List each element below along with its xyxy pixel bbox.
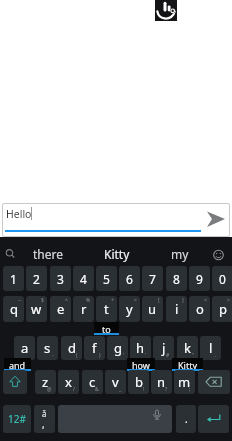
staticText: 5 [103, 271, 110, 287]
button[interactable]: and [4, 358, 31, 371]
button[interactable]: 6 [119, 266, 140, 291]
button[interactable] [155, 0, 177, 21]
button[interactable]: i [166, 296, 187, 322]
staticText: and [9, 359, 26, 371]
button[interactable] [198, 405, 229, 433]
button[interactable]: h [130, 336, 151, 360]
staticText: @ [47, 386, 52, 393]
staticText: 8 [173, 271, 180, 287]
staticText: f [92, 339, 97, 357]
staticText: ' [145, 352, 147, 359]
button[interactable]: p [212, 296, 232, 322]
staticText: ] [182, 297, 184, 304]
staticText: 12# [8, 412, 26, 426]
button[interactable]: a [14, 336, 35, 360]
staticText: t [104, 300, 109, 318]
staticText: q [10, 300, 18, 318]
button[interactable]: k [177, 336, 198, 360]
button[interactable] [58, 405, 172, 433]
button[interactable]: q [3, 296, 24, 322]
button[interactable]: 12# [3, 405, 31, 433]
button[interactable]: f [84, 336, 105, 360]
button[interactable]: t [96, 296, 117, 322]
button[interactable]: l [200, 336, 221, 360]
button[interactable]: 3 [50, 266, 71, 291]
button[interactable]: c [82, 370, 103, 394]
button[interactable]: 9 [189, 266, 210, 291]
button[interactable]: 2 [26, 266, 47, 291]
button[interactable]: 5 [96, 266, 117, 291]
staticText: c [89, 373, 96, 391]
button[interactable]: . [176, 405, 196, 433]
staticText: Hello [6, 207, 32, 221]
staticText: to [102, 323, 111, 335]
staticText: [ [158, 297, 160, 304]
button[interactable]: w [26, 296, 47, 322]
staticText: ? [165, 386, 168, 393]
button[interactable] [198, 370, 230, 394]
button[interactable] [2, 203, 230, 237]
button[interactable]: 0 [212, 266, 232, 291]
staticText: ~ [18, 297, 21, 304]
button[interactable] [202, 206, 230, 232]
staticText: y [126, 300, 133, 318]
staticText: h [136, 339, 145, 357]
button[interactable]: d [61, 336, 82, 360]
staticText: 6 [126, 271, 133, 287]
staticText: o [196, 300, 204, 318]
staticText: / [73, 386, 75, 393]
button[interactable]: m [174, 370, 195, 394]
staticText: s [44, 339, 51, 357]
button[interactable]: v [105, 370, 126, 394]
staticText: - [52, 352, 54, 359]
button[interactable] [3, 370, 27, 394]
staticText: % [86, 297, 91, 304]
staticText: my [171, 246, 189, 262]
button[interactable]: e [50, 296, 71, 322]
staticText: _ [119, 386, 122, 393]
staticText: 4 [80, 271, 87, 287]
staticText: ǎ [42, 408, 47, 419]
staticText: i [175, 300, 179, 318]
button[interactable]: how [127, 358, 155, 371]
staticText: l [209, 339, 213, 357]
staticText: Kitty [178, 359, 197, 371]
button[interactable]: u [142, 296, 163, 322]
button[interactable]: j [153, 336, 174, 360]
staticText: 0 [219, 271, 226, 287]
button[interactable]: 8 [166, 266, 187, 291]
staticText: ^ [65, 297, 68, 304]
button[interactable]: to [94, 322, 119, 335]
staticText: = [134, 297, 137, 304]
staticText: k [184, 339, 191, 357]
button[interactable] [0, 237, 232, 266]
button[interactable]: 1 [3, 266, 24, 291]
button[interactable]: Kitty [172, 358, 203, 371]
button[interactable]: r [73, 296, 94, 322]
staticText: $ [41, 297, 44, 304]
button[interactable]: b [128, 370, 149, 394]
staticText: j [162, 339, 166, 357]
button[interactable]: 4 [73, 266, 94, 291]
staticText: m [178, 373, 191, 391]
button[interactable]: 7 [142, 266, 163, 291]
staticText: > [227, 297, 230, 304]
staticText: a [21, 339, 29, 357]
staticText: . [185, 412, 188, 426]
button[interactable]: g [107, 336, 128, 360]
staticText: ; [189, 386, 191, 393]
staticText: 1 [10, 271, 17, 287]
staticText: how [132, 359, 150, 371]
button[interactable]: s [37, 336, 58, 360]
staticText: r [81, 300, 87, 318]
button[interactable]: n [151, 370, 172, 394]
staticText: b [135, 373, 143, 391]
button[interactable]: z [35, 370, 56, 394]
staticText: ) [99, 352, 101, 359]
button[interactable]: ǎ [34, 405, 55, 433]
button[interactable]: o [189, 296, 210, 322]
staticText: g [114, 339, 122, 357]
button[interactable]: x [58, 370, 79, 394]
staticText: x [65, 373, 72, 391]
button[interactable]: y [119, 296, 140, 322]
